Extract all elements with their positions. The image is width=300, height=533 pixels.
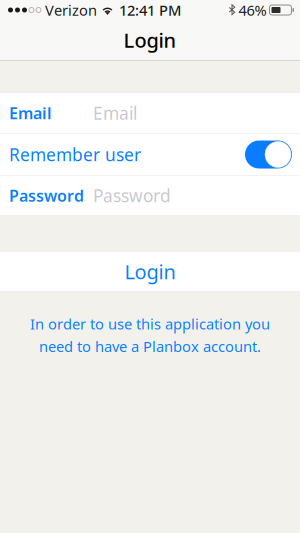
staticText: Password [9, 185, 84, 206]
staticText: Remember user [9, 143, 141, 166]
staticText: In order to use this application you [30, 314, 270, 333]
staticText: Login [124, 258, 175, 285]
button[interactable]: Password [0, 176, 300, 215]
staticText: 12:41 PM [119, 0, 181, 20]
button[interactable]: Email [0, 93, 300, 133]
staticText: Verizon [45, 0, 97, 20]
staticText: need to have a Planbox account. [39, 336, 261, 356]
button[interactable]: Login [0, 252, 300, 291]
staticText: Email [93, 101, 137, 124]
button[interactable]: Remember user [245, 140, 292, 168]
staticText: Login [123, 27, 176, 53]
staticText: Password [93, 184, 171, 207]
staticText: 46% [238, 0, 266, 20]
staticText: Email [9, 102, 52, 124]
